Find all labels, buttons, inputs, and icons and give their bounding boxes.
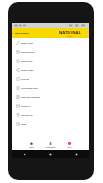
staticText: NATIONAL — [59, 30, 81, 35]
button[interactable]: Share the app — [12, 65, 89, 74]
staticText: About us — [21, 78, 29, 80]
button[interactable]: Back — [23, 153, 26, 156]
staticText: My Bookings — [45, 146, 56, 148]
button[interactable]: Track my bus — [12, 110, 89, 119]
staticText: More Options — [15, 32, 29, 35]
button[interactable]: Contact us — [12, 101, 89, 110]
button[interactable]: Home — [22, 142, 41, 150]
staticText: Rate the app — [21, 60, 33, 62]
button[interactable]: Modify Ticket — [12, 38, 89, 47]
staticText: Modify Ticket — [21, 42, 34, 44]
staticText: Home — [29, 146, 34, 148]
staticText: More — [67, 146, 72, 148]
button[interactable]: Terms and conditions — [12, 92, 89, 101]
button[interactable]: Cancellation policy — [12, 83, 89, 92]
button[interactable]: Login — [12, 119, 89, 128]
staticText: Write feedback — [21, 51, 35, 53]
button[interactable]: About us — [12, 74, 89, 83]
button[interactable]: Write feedback — [12, 47, 89, 56]
staticText: Track my bus — [21, 114, 33, 116]
staticText: Contact us — [21, 105, 31, 107]
button[interactable]: My Bookings — [41, 142, 60, 150]
staticText: Cancellation policy — [21, 87, 38, 89]
button[interactable]: Recent apps — [75, 153, 78, 156]
button[interactable]: Rate the app — [12, 56, 89, 65]
staticText: Share the app — [21, 69, 34, 71]
staticText: Terms and conditions — [21, 96, 41, 98]
button[interactable]: Home — [49, 153, 52, 156]
staticText: express — [67, 35, 73, 37]
staticText: Login — [21, 123, 26, 125]
button[interactable]: More — [60, 142, 79, 150]
